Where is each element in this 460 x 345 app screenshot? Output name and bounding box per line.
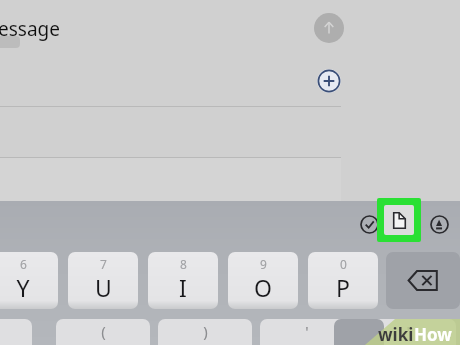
staticText: essage xyxy=(0,16,60,42)
button[interactable]: Draw xyxy=(427,212,451,236)
button[interactable] xyxy=(0,319,32,345)
staticText: P xyxy=(336,272,350,303)
button[interactable]: 8 xyxy=(148,252,218,309)
staticText: 6 xyxy=(20,256,27,272)
staticText: I xyxy=(179,272,187,303)
staticText: U xyxy=(95,272,112,303)
staticText: Y xyxy=(16,272,30,303)
staticText: 0 xyxy=(340,256,347,272)
button[interactable]: 0 xyxy=(308,252,378,309)
button[interactable]: Document xyxy=(384,205,414,235)
staticText: " xyxy=(406,321,413,341)
staticText: 9 xyxy=(260,256,267,272)
button[interactable]: 7 xyxy=(68,252,138,309)
button[interactable]: Backspace xyxy=(386,252,460,309)
button[interactable]: ' xyxy=(260,319,354,345)
staticText: How xyxy=(414,323,452,345)
button[interactable]: ) xyxy=(158,319,252,345)
button[interactable]: 9 xyxy=(228,252,298,309)
button[interactable]: Key xyxy=(334,319,384,345)
staticText: ( xyxy=(101,321,106,341)
button[interactable]: " xyxy=(362,319,456,345)
button[interactable]: ( xyxy=(56,319,150,345)
staticText: ) xyxy=(203,321,208,341)
button[interactable]: 6 xyxy=(0,252,58,309)
staticText: O xyxy=(254,272,272,303)
staticText: 8 xyxy=(180,256,187,272)
button[interactable]: Add attachment xyxy=(315,67,343,95)
staticText: wiki xyxy=(378,323,414,345)
staticText: 7 xyxy=(100,256,107,272)
button[interactable]: Confirm xyxy=(357,212,381,236)
staticText: ' xyxy=(305,321,309,341)
button[interactable]: Send xyxy=(314,13,344,43)
